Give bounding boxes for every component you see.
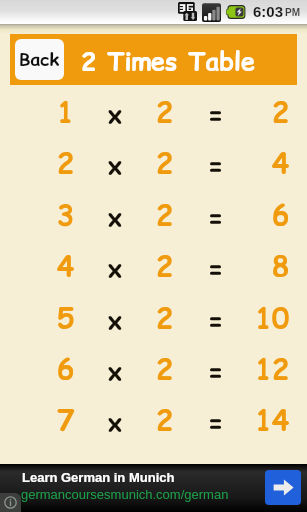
staticText: 2 xyxy=(156,195,174,233)
staticText: x xyxy=(108,149,123,182)
staticText: x xyxy=(108,252,123,285)
button[interactable]: 1 xyxy=(0,92,307,130)
staticText: x xyxy=(108,98,123,131)
button[interactable]: 2 xyxy=(0,143,307,181)
staticText: 2 xyxy=(156,92,174,130)
staticText: x xyxy=(108,406,123,439)
staticText: x xyxy=(108,355,123,388)
staticText: 2 xyxy=(156,400,174,438)
staticText: 2 xyxy=(156,349,174,387)
staticText: x xyxy=(108,201,123,234)
staticText: Back xyxy=(19,47,60,72)
staticText: 4 xyxy=(272,143,290,181)
staticText: 2 xyxy=(156,298,174,336)
button[interactable]: Ad info xyxy=(0,464,307,512)
staticText: 2 xyxy=(272,92,290,130)
staticText: 6 xyxy=(57,349,75,387)
staticText: 2 Times Table xyxy=(81,44,255,79)
staticText: 12 xyxy=(255,349,290,387)
button[interactable]: 6 xyxy=(0,349,307,387)
staticText: 2 xyxy=(156,246,174,284)
staticText: germancoursesmunich.com/german xyxy=(21,487,229,502)
staticText: 6:03 xyxy=(253,3,284,20)
staticText: 6 xyxy=(272,195,290,233)
button[interactable]: Back xyxy=(15,39,64,80)
staticText: 8 xyxy=(272,246,290,284)
staticText: 4 xyxy=(57,246,75,284)
staticText: 2 xyxy=(57,143,75,181)
staticText: 7 xyxy=(57,400,75,438)
staticText: 2 xyxy=(156,143,174,181)
button[interactable]: 4 xyxy=(0,246,307,284)
staticText: 10 xyxy=(255,298,290,336)
button[interactable]: 3 xyxy=(0,195,307,233)
staticText: 5 xyxy=(57,298,75,336)
staticText: 1 xyxy=(57,92,75,130)
staticText: Learn German in Munich xyxy=(22,470,175,485)
staticText: x xyxy=(108,304,123,337)
button[interactable]: Ad info xyxy=(0,493,21,512)
staticText: 3 xyxy=(57,195,75,233)
staticText: 14 xyxy=(255,400,290,438)
button[interactable]: Open ad xyxy=(265,470,301,505)
button[interactable]: 7 xyxy=(0,400,307,438)
button[interactable]: 5 xyxy=(0,298,307,336)
staticText: PM xyxy=(285,7,300,18)
